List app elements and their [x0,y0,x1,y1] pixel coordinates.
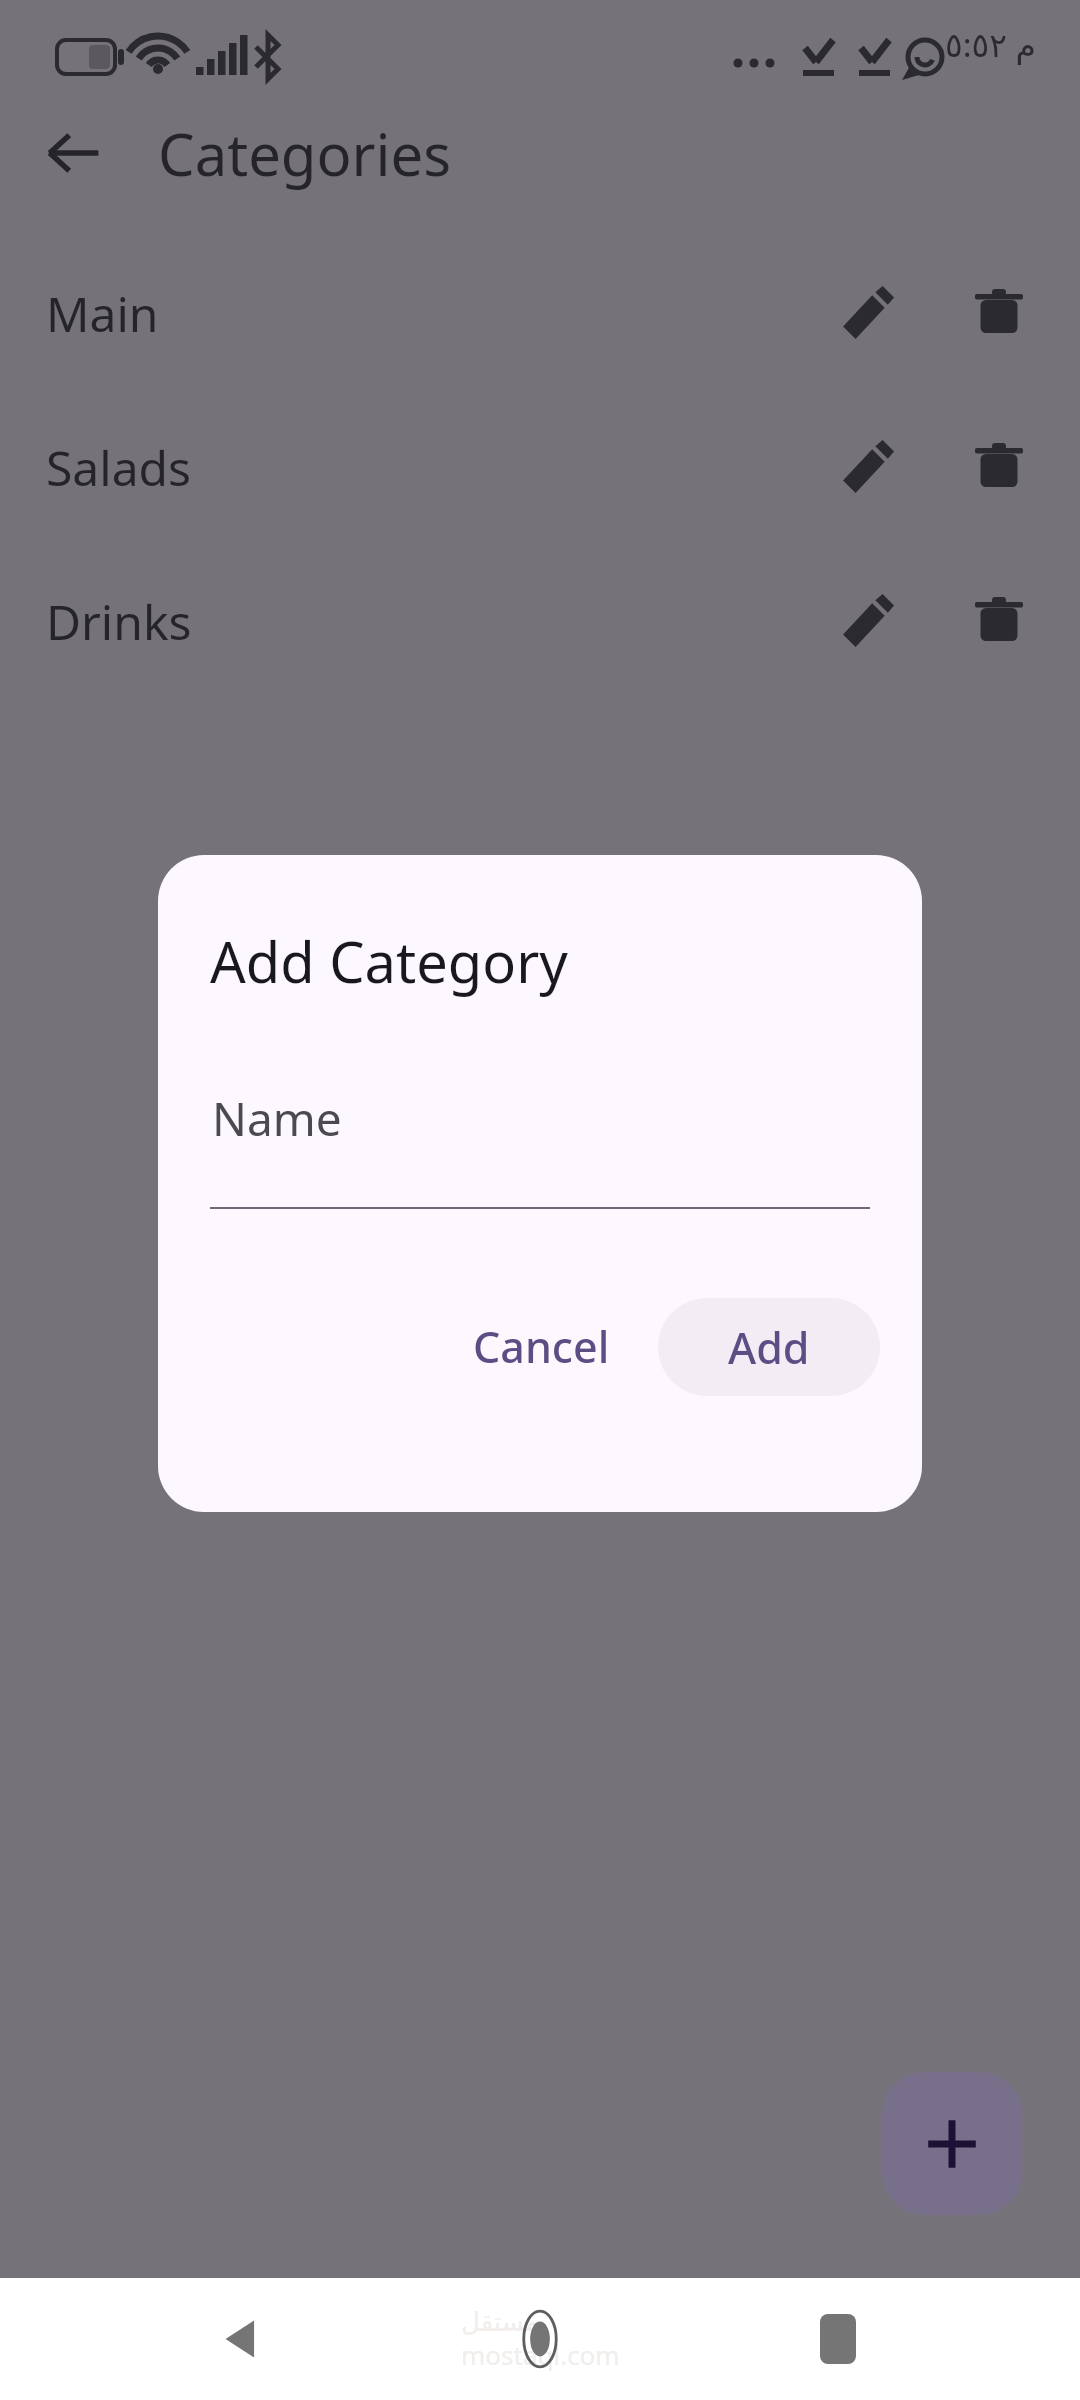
button[interactable]: Back [188,2284,298,2394]
staticText: Add Category [210,923,568,999]
staticText: Add [728,1318,810,1377]
button[interactable]: Delete Salads [946,414,1052,520]
button[interactable]: Edit Drinks [814,568,920,674]
button[interactable]: Add [658,1298,880,1396]
button[interactable]: Add category [882,2072,1022,2215]
button[interactable]: Recent apps [783,2284,893,2394]
button[interactable]: Cancel [441,1293,642,1400]
button[interactable]: Drinks [0,566,1080,676]
staticText: Categories [158,114,452,193]
staticText: م ٥:٥٢ [945,22,1037,67]
button[interactable]: Delete Drinks [946,568,1052,674]
staticText: Drinks [46,589,814,654]
button[interactable]: Delete Main [946,260,1052,366]
button[interactable]: Edit Salads [814,414,920,520]
staticText: Cancel [473,1317,610,1376]
staticText: مستقل mostaql.com [461,2307,620,2372]
button[interactable]: Salads [0,412,1080,522]
staticText: Salads [46,435,814,500]
staticText: Main [46,281,814,346]
staticText: Name [212,1087,342,1150]
button[interactable]: Main [0,258,1080,368]
button[interactable]: Edit Main [814,260,920,366]
button[interactable]: Back [30,110,116,196]
button[interactable]: Home [485,2284,595,2394]
